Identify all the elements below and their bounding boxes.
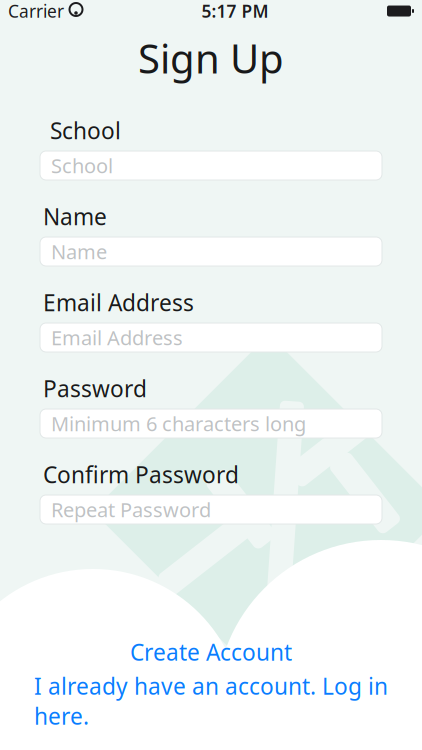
staticText: Email Address: [43, 287, 194, 317]
button[interactable]: I already have an account. Log in here.: [31, 684, 391, 718]
button[interactable]: Name: [40, 237, 382, 266]
staticText: Repeat Password: [51, 496, 211, 523]
button[interactable]: Create Account: [61, 634, 361, 670]
staticText: School: [51, 152, 113, 179]
staticText: School: [50, 115, 121, 145]
staticText: Email Address: [51, 324, 183, 351]
staticText: I already have an account. Log in here.: [34, 671, 388, 731]
staticText: Name: [51, 238, 107, 265]
button[interactable]: Repeat Password: [40, 495, 382, 524]
button[interactable]: Email Address: [40, 323, 382, 352]
button[interactable]: School: [40, 151, 382, 180]
staticText: Sign Up: [138, 31, 284, 84]
staticText: Carrier: [8, 0, 64, 22]
staticText: Minimum 6 characters long: [51, 410, 306, 437]
staticText: Confirm Password: [43, 459, 239, 489]
staticText: Password: [43, 373, 147, 403]
staticText: Create Account: [130, 637, 292, 667]
button[interactable]: Minimum 6 characters long: [40, 409, 382, 438]
staticText: 5:17 PM: [201, 0, 268, 22]
staticText: Name: [43, 201, 107, 231]
